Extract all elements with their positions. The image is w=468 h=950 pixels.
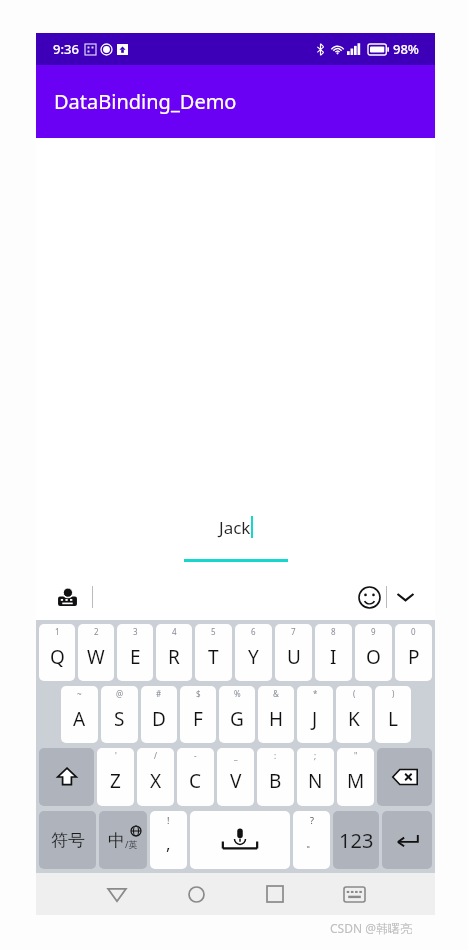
staticText: K — [348, 706, 360, 732]
button[interactable]: Space — [190, 811, 290, 869]
button[interactable]: 5 — [195, 624, 232, 681]
button[interactable]: _ — [217, 748, 254, 806]
staticText: Q — [50, 644, 65, 670]
staticText: 9:36 — [53, 40, 79, 58]
button[interactable]: ? — [293, 811, 330, 869]
staticText: S — [114, 706, 125, 732]
button[interactable]: ; — [297, 748, 334, 806]
button[interactable]: Home — [174, 873, 218, 915]
button[interactable]: Enter — [382, 811, 432, 869]
button[interactable]: / — [137, 748, 174, 806]
staticText: D — [152, 706, 166, 732]
button[interactable]: 符号 — [39, 811, 96, 869]
button[interactable]: % — [219, 686, 255, 743]
button[interactable]: Hide keyboard — [387, 579, 423, 615]
button[interactable]: & — [258, 686, 294, 743]
button[interactable]: ) — [375, 686, 411, 743]
button[interactable]: # — [141, 686, 177, 743]
staticText: 8 — [331, 626, 336, 637]
staticText: W — [87, 644, 105, 670]
button[interactable]: Emoji — [352, 580, 386, 614]
staticText: R — [168, 644, 180, 670]
button[interactable]: 6 — [235, 624, 272, 681]
button[interactable]: Chinese English toggle — [99, 811, 147, 869]
button[interactable]: @ — [101, 686, 138, 743]
button[interactable]: 0 — [395, 624, 432, 681]
staticText: : — [274, 750, 277, 761]
button[interactable]: ( — [336, 686, 372, 743]
staticText: J — [312, 706, 318, 732]
button[interactable]: 7 — [275, 624, 312, 681]
button[interactable]: - — [177, 748, 214, 806]
staticText: H — [269, 706, 284, 732]
staticText: 6 — [251, 626, 256, 637]
button[interactable]: 9 — [355, 624, 392, 681]
staticText: I — [330, 644, 337, 670]
staticText: ; — [314, 750, 317, 761]
staticText: 7 — [291, 626, 296, 637]
button[interactable]: 4 — [156, 624, 192, 681]
staticText: 符号 — [51, 830, 85, 851]
staticText: @ — [116, 688, 124, 699]
staticText: 9 — [371, 626, 376, 637]
staticText: Jack — [219, 516, 251, 539]
button[interactable]: Switch input language — [50, 580, 84, 614]
button[interactable]: ~ — [61, 686, 98, 743]
staticText: 5 — [211, 626, 216, 637]
staticText: _ — [234, 750, 238, 761]
button[interactable]: Shift — [39, 748, 94, 806]
button[interactable]: Back — [95, 873, 139, 915]
staticText: 2 — [94, 626, 99, 637]
button[interactable]: Recents — [253, 873, 297, 915]
staticText: ! — [167, 814, 170, 826]
staticText: & — [273, 688, 279, 699]
staticText: * — [313, 688, 318, 699]
staticText: 0 — [411, 626, 416, 637]
button[interactable]: 3 — [117, 624, 153, 681]
staticText: ( — [353, 688, 356, 699]
staticText: P — [408, 644, 420, 670]
button[interactable]: Backspace — [377, 748, 432, 806]
button[interactable]: 2 — [78, 624, 114, 681]
button[interactable]: * — [297, 686, 333, 743]
staticText: Z — [110, 768, 121, 794]
staticText: F — [193, 706, 203, 732]
staticText: ~ — [77, 688, 82, 699]
staticText: # — [156, 688, 162, 699]
staticText: % — [234, 688, 241, 699]
staticText: A — [73, 706, 86, 732]
staticText: / — [154, 750, 157, 761]
staticText: " — [354, 750, 358, 761]
staticText: 1 — [55, 626, 60, 637]
button[interactable]: $ — [180, 686, 216, 743]
staticText: , — [166, 832, 171, 855]
staticText: B — [269, 768, 282, 794]
staticText: N — [308, 768, 323, 794]
staticText: Y — [248, 644, 259, 670]
button[interactable]: 8 — [315, 624, 352, 681]
staticText: - — [194, 750, 197, 761]
button[interactable]: 1 — [39, 624, 75, 681]
staticText: 123 — [339, 827, 374, 854]
button[interactable]: : — [257, 748, 294, 806]
staticText: DataBinding_Demo — [54, 88, 237, 115]
staticText: E — [130, 644, 141, 670]
staticText: 中 — [108, 830, 125, 851]
button[interactable]: " — [337, 748, 374, 806]
staticText: 98% — [393, 40, 419, 58]
staticText: 3 — [133, 626, 138, 637]
staticText: ? — [310, 814, 314, 826]
button[interactable]: ' — [97, 748, 134, 806]
button[interactable]: ! — [150, 811, 187, 869]
staticText: ' — [115, 750, 117, 761]
staticText: M — [347, 768, 365, 794]
staticText: 4 — [172, 626, 177, 637]
staticText: G — [230, 706, 244, 732]
staticText: C — [189, 768, 202, 794]
staticText: T — [208, 644, 219, 670]
staticText: O — [366, 644, 381, 670]
staticText: $ — [196, 688, 201, 699]
staticText: 。 — [306, 836, 317, 850]
button[interactable]: Hide keyboard — [332, 873, 376, 915]
button[interactable]: 123 — [333, 811, 379, 869]
